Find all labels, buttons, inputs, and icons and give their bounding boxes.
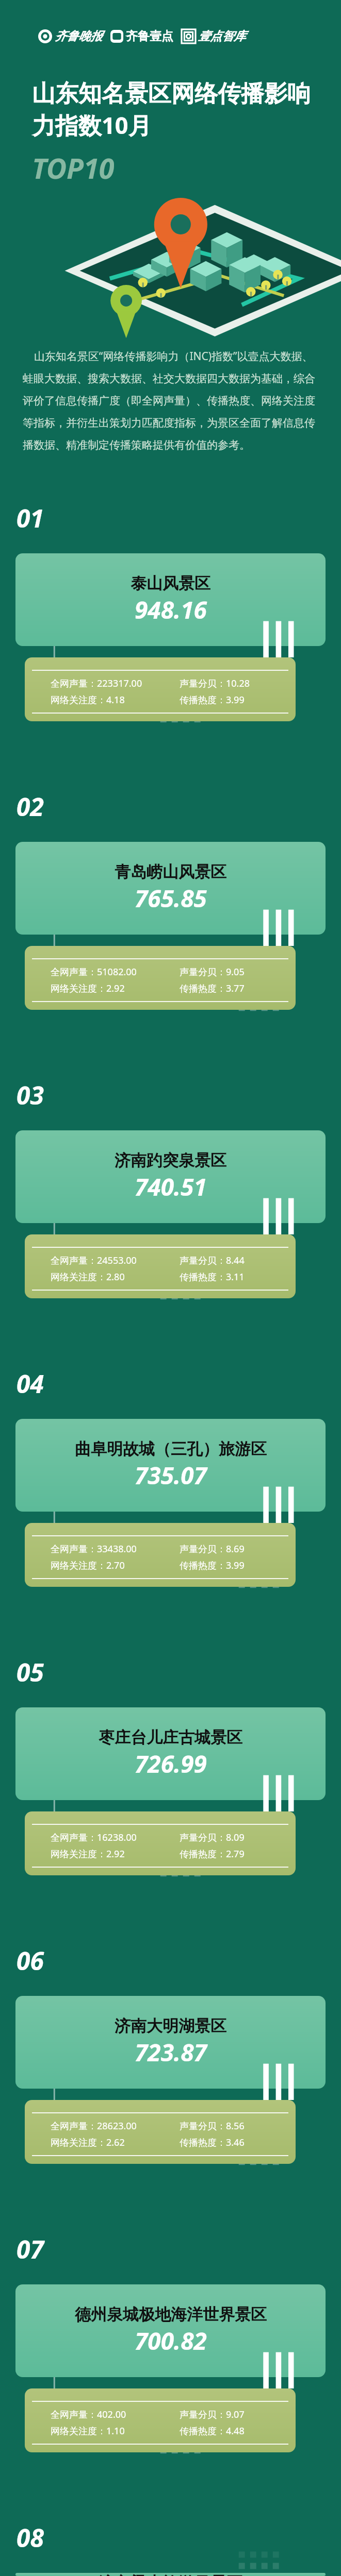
staticText: 网络关注度：2.62 (51, 2136, 125, 2149)
staticText: 德州泉城极地海洋世界景区 (75, 2304, 267, 2325)
staticText: 全网声量：402.00 (51, 2408, 126, 2421)
staticText: 声量分贝：8.09 (180, 1831, 245, 1844)
staticText: TOP10 (32, 149, 115, 187)
staticText: 网络关注度：2.70 (51, 1559, 125, 1572)
staticText: 网络关注度：4.18 (51, 693, 125, 706)
staticText: 07 (17, 2232, 44, 2266)
staticText: 声量分贝：8.44 (180, 1254, 245, 1267)
button[interactable]: 曲阜明故城（三孔）旅游区 (15, 1419, 326, 1512)
staticText: 全网声量：24553.00 (51, 1254, 137, 1267)
button[interactable]: 全网声量：223317.00 (25, 657, 296, 721)
staticText: 全网声量：16238.00 (51, 1831, 137, 1844)
button[interactable]: 全网声量：16238.00 (25, 1811, 296, 1875)
staticText: 700.82 (135, 2325, 207, 2357)
staticText: 948.16 (135, 594, 207, 626)
staticText: 齐鲁壹点 (126, 29, 173, 44)
staticText: 网络关注度：2.92 (51, 1848, 125, 1860)
staticText: 765.85 (135, 882, 207, 914)
staticText: 723.87 (135, 2036, 207, 2069)
button[interactable]: 全网声量：51082.00 (25, 946, 296, 1010)
button[interactable]: 泰山风景区 (15, 553, 326, 646)
staticText: 03 (17, 1078, 44, 1112)
staticText: 济南趵突泉景区 (115, 1150, 226, 1171)
staticText: 全网声量：51082.00 (51, 965, 137, 978)
staticText: 05 (17, 1655, 44, 1689)
staticText: 全网声量：28623.00 (51, 2120, 137, 2132)
staticText: 全网声量：33438.00 (51, 1543, 137, 1555)
staticText: 传播热度：4.48 (180, 2425, 245, 2437)
staticText: 04 (17, 1367, 44, 1400)
staticText: 网络关注度：2.80 (51, 1270, 125, 1283)
staticText: 济宁梁山旅游风景区 (99, 2573, 242, 2576)
staticText: 735.07 (135, 1459, 207, 1492)
staticText: 枣庄台儿庄古城景区 (99, 1727, 242, 1748)
staticText: 网络关注度：1.10 (51, 2425, 125, 2437)
button[interactable]: 青岛崂山风景区 (15, 842, 326, 935)
staticText: 02 (17, 790, 44, 823)
staticText: 06 (17, 1944, 44, 1977)
button[interactable]: 全网声量：24553.00 (25, 1234, 296, 1298)
staticText: 声量分贝：9.05 (180, 965, 245, 978)
staticText: 声量分贝：10.28 (180, 677, 250, 690)
staticText: 传播热度：2.79 (180, 1848, 245, 1860)
staticText: 曲阜明故城（三孔）旅游区 (75, 1439, 267, 1459)
staticText: 传播热度：3.99 (180, 1559, 245, 1572)
button[interactable]: 全网声量：33438.00 (25, 1523, 296, 1587)
staticText: 声量分贝：8.56 (180, 2120, 245, 2132)
button[interactable]: 全网声量：28623.00 (25, 2100, 296, 2164)
staticText: 济南大明湖景区 (115, 2016, 226, 2036)
staticText: 08 (17, 2521, 44, 2554)
staticText: 泰山风景区 (131, 573, 210, 594)
button[interactable]: 德州泉城极地海洋世界景区 (15, 2284, 326, 2377)
staticText: 01 (17, 501, 44, 535)
staticText: 网络关注度：2.92 (51, 982, 125, 995)
staticText: 全网声量：223317.00 (51, 677, 142, 690)
button[interactable]: 全网声量：402.00 (25, 2388, 296, 2452)
staticText: 传播热度：3.77 (180, 982, 245, 995)
staticText: 壹点智库 (198, 29, 246, 44)
staticText: 726.99 (135, 1748, 207, 1780)
staticText: 传播热度：3.99 (180, 693, 245, 706)
staticText: 山东知名景区网络传播影响力指数10月 (32, 79, 314, 141)
staticText: 传播热度：3.46 (180, 2136, 245, 2149)
button[interactable]: 济南趵突泉景区 (15, 1130, 326, 1223)
button[interactable]: 济宁梁山旅游风景区 (15, 2573, 326, 2576)
staticText: 山东知名景区“网络传播影响力（INC)指数”以壹点大数据、蛙眼大数据、搜索大数据… (23, 349, 318, 452)
button[interactable]: 枣庄台儿庄古城景区 (15, 1707, 326, 1800)
button[interactable]: 济南大明湖景区 (15, 1996, 326, 2089)
staticText: 740.51 (135, 1171, 207, 1203)
staticText: 传播热度：3.11 (180, 1270, 245, 1283)
staticText: 齐鲁晚报 (55, 29, 102, 44)
staticText: 青岛崂山风景区 (115, 862, 226, 882)
staticText: 声量分贝：8.69 (180, 1543, 245, 1555)
staticText: 声量分贝：9.07 (180, 2408, 245, 2421)
